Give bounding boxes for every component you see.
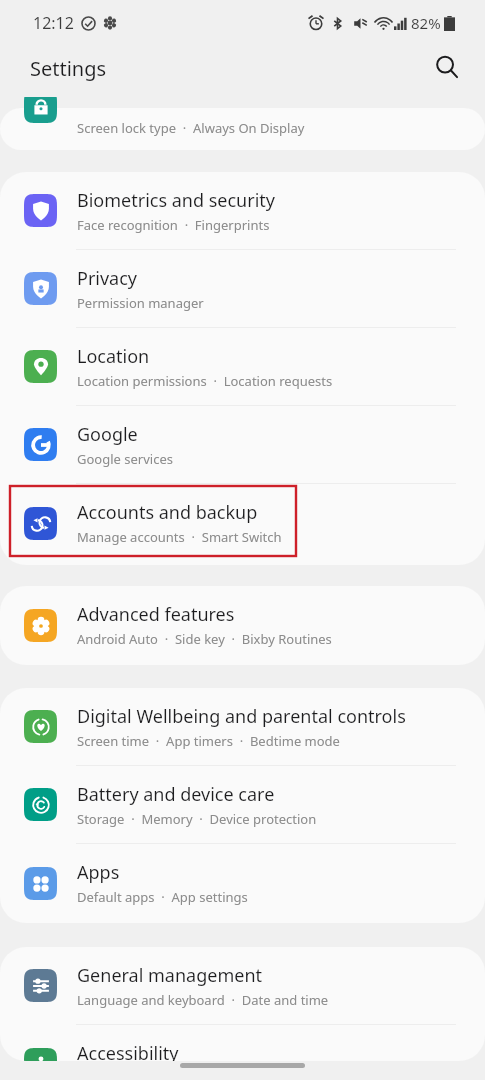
staticText: Google services bbox=[77, 450, 173, 468]
staticText: Face recognition · Fingerprints bbox=[77, 216, 270, 234]
staticText: 12:12 bbox=[33, 12, 74, 34]
staticText: Permission manager bbox=[77, 294, 204, 312]
staticText: Location bbox=[77, 344, 150, 369]
button[interactable]: Digital Wellbeing and parental controls bbox=[0, 688, 485, 766]
staticText: Android Auto · Side key · Bixby Routines bbox=[77, 630, 332, 648]
button[interactable]: Accounts and backup bbox=[0, 484, 485, 562]
staticText: Location permissions · Location requests bbox=[77, 372, 333, 390]
staticText: Language and keyboard · Date and time bbox=[77, 991, 329, 1009]
button[interactable]: Advanced features bbox=[0, 586, 485, 664]
button[interactable]: Google bbox=[0, 406, 485, 484]
staticText: Digital Wellbeing and parental controls bbox=[77, 704, 406, 729]
staticText: Battery and device care bbox=[77, 782, 275, 807]
staticText: Storage · Memory · Device protection bbox=[77, 810, 317, 828]
button[interactable]: Battery and device care bbox=[0, 766, 485, 844]
button[interactable]: Accessibility bbox=[0, 1025, 485, 1061]
staticText: General management bbox=[77, 963, 263, 988]
staticText: Privacy bbox=[77, 266, 138, 291]
button[interactable]: Privacy bbox=[0, 250, 485, 328]
button[interactable]: General management bbox=[0, 947, 485, 1025]
button[interactable]: Biometrics and security bbox=[0, 172, 485, 250]
staticText: Apps bbox=[77, 860, 120, 885]
button[interactable]: Apps bbox=[0, 844, 485, 922]
staticText: Settings bbox=[30, 55, 107, 82]
staticText: Google bbox=[77, 422, 138, 447]
button[interactable]: Location bbox=[0, 328, 485, 406]
staticText: Manage accounts · Smart Switch bbox=[77, 528, 282, 546]
staticText: Accounts and backup bbox=[77, 500, 258, 525]
staticText: 82% bbox=[411, 13, 441, 33]
staticText: Screen time · App timers · Bedtime mode bbox=[77, 732, 340, 750]
staticText: Default apps · App settings bbox=[77, 888, 248, 906]
button[interactable]: Search bbox=[425, 45, 469, 89]
staticText: Biometrics and security bbox=[77, 188, 275, 213]
staticText: Advanced features bbox=[77, 602, 235, 627]
staticText: Screen lock type · Always On Display bbox=[77, 119, 305, 137]
staticText: Accessibility bbox=[77, 1041, 179, 1061]
